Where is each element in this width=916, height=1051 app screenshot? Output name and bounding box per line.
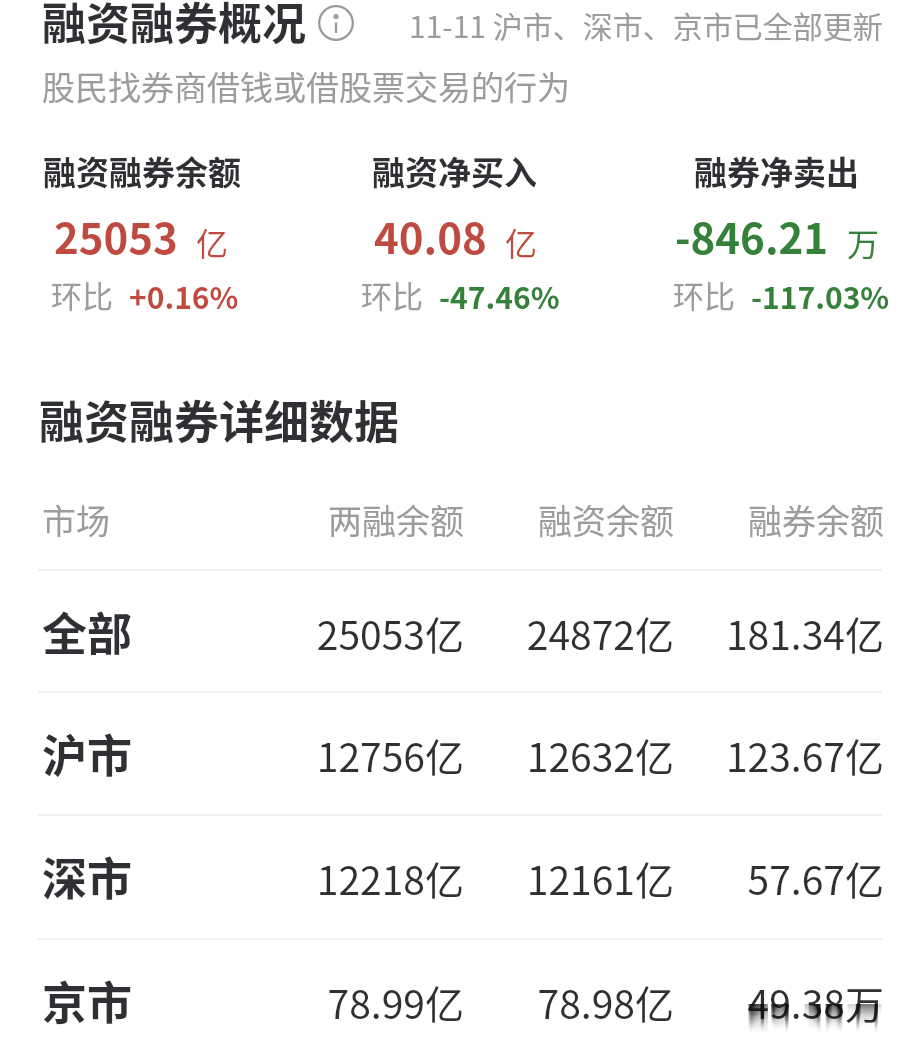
staticText: 49.38万 (674, 1004, 884, 1011)
staticText: 股民找券商借钱或借股票交易的行为 (42, 62, 570, 110)
staticText: 49.38万 (674, 1004, 884, 1031)
staticText: 两融余额 (254, 495, 464, 544)
staticText: 融券余额 (674, 495, 884, 544)
staticText: 49.38万 (674, 1004, 884, 1023)
staticText: -117.03% (751, 274, 890, 317)
staticText: 49.38万 (674, 1004, 884, 1028)
staticText: 市场 (42, 495, 110, 544)
staticText: 49.38万 (674, 1004, 884, 1010)
button[interactable] (311, 140, 601, 320)
staticText: 49.38万 (674, 1004, 884, 1038)
staticText: 环比 (673, 272, 735, 317)
staticText: -846.21 (675, 205, 829, 266)
button[interactable]: 沪市 (0, 691, 916, 813)
staticText: 49.38万 (674, 974, 884, 1030)
staticText: 融券净卖出 (694, 147, 859, 195)
staticText: 49.38万 (674, 1004, 884, 1029)
staticText: 全部 (42, 599, 133, 664)
staticText: 40.08 (374, 205, 487, 266)
staticText: 49.38万 (674, 1004, 884, 1026)
staticText: 49.38万 (674, 1004, 884, 1017)
staticText: 49.38万 (674, 1004, 884, 1015)
staticText: 融资融券详细数据 (39, 387, 400, 452)
staticText: 49.38万 (674, 1004, 884, 1016)
staticText: 49.38万 (674, 1004, 884, 1019)
staticText: 49.38万 (674, 1004, 884, 1018)
staticText: 49.38万 (674, 1004, 884, 1005)
staticText: 25053亿 (254, 605, 464, 661)
staticText: -47.46% (439, 274, 560, 317)
button[interactable] (0, 140, 286, 320)
staticText: 12756亿 (254, 727, 464, 783)
staticText: 49.38万 (674, 1004, 884, 1027)
staticText: 亿 (505, 219, 538, 265)
staticText: 融资融券余额 (43, 147, 241, 195)
button[interactable]: 京市 (0, 938, 916, 1051)
staticText: 49.38万 (674, 1004, 884, 1033)
staticText: 融资余额 (464, 495, 674, 544)
staticText: 24872亿 (464, 605, 674, 661)
button[interactable] (632, 140, 916, 320)
staticText: 49.38万 (674, 1004, 884, 1013)
staticText: 11-11 沪市、深市、京市已全部更新 (409, 3, 883, 46)
button[interactable]: 全部 (0, 569, 916, 691)
staticText: 49.38万 (674, 1004, 884, 1037)
staticText: 深市 (42, 844, 133, 909)
staticText: 49.38万 (674, 1004, 884, 1035)
staticText: 49.38万 (674, 1004, 884, 1024)
staticText: 环比 (51, 272, 113, 317)
staticText: 49.38万 (674, 1004, 884, 1022)
button[interactable]: 深市 (0, 814, 916, 936)
staticText: 12218亿 (254, 850, 464, 906)
staticText: 49.38万 (674, 1004, 884, 1007)
staticText: 49.38万 (674, 1004, 884, 1036)
staticText: 12161亿 (464, 850, 674, 906)
staticText: 181.34亿 (674, 605, 884, 661)
staticText: 万 (847, 219, 880, 265)
staticText: 49.38万 (674, 1004, 884, 1032)
staticText: 京市 (42, 968, 133, 1033)
staticText: 融资融券概况 (42, 0, 306, 53)
staticText: 49.38万 (674, 1004, 884, 1014)
staticText: 49.38万 (674, 1004, 884, 1021)
staticText: 123.67亿 (674, 727, 884, 783)
staticText: 49.38万 (674, 1004, 884, 1012)
staticText: 12632亿 (464, 727, 674, 783)
staticText: 25053 (54, 205, 178, 266)
staticText: 环比 (361, 272, 423, 317)
staticText: 沪市 (42, 721, 133, 786)
staticText: 49.38万 (674, 1004, 884, 1009)
staticText: 78.99亿 (254, 974, 464, 1030)
staticText: +0.16% (129, 274, 239, 317)
staticText: 57.67亿 (674, 850, 884, 906)
staticText: 49.38万 (674, 1004, 884, 1020)
button[interactable]: About margin trading (317, 4, 355, 42)
staticText: 49.38万 (674, 1004, 884, 1034)
staticText: 49.38万 (674, 1004, 884, 1006)
staticText: 49.38万 (674, 1004, 884, 1025)
staticText: 78.98亿 (464, 974, 674, 1030)
staticText: 亿 (196, 219, 229, 265)
staticText: 49.38万 (674, 1004, 884, 1008)
staticText: 49.38万 (674, 1004, 884, 1030)
staticText: 融资净买入 (372, 147, 537, 195)
